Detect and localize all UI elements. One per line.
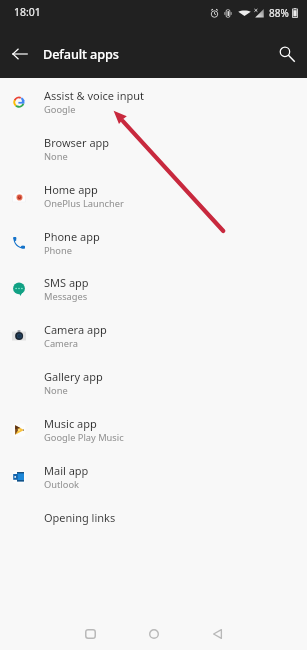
button[interactable]: Search: [267, 34, 307, 74]
staticText: Default apps: [43, 45, 119, 62]
staticText: SMS app: [44, 275, 89, 290]
button[interactable]: Home: [137, 617, 171, 650]
staticText: Assist & voice input: [44, 88, 145, 103]
button[interactable]: Recent apps: [73, 617, 107, 650]
staticText: Outlook: [44, 478, 79, 491]
staticText: Messages: [44, 290, 88, 303]
button[interactable]: Home app: [0, 172, 307, 219]
button[interactable]: Music app: [0, 406, 307, 453]
staticText: Gallery app: [44, 369, 103, 384]
button[interactable]: Phone app: [0, 219, 307, 266]
staticText: None: [44, 384, 68, 397]
staticText: Camera: [44, 337, 78, 350]
staticText: Home app: [44, 182, 98, 197]
staticText: Google: [44, 103, 76, 116]
staticText: Phone: [44, 244, 72, 257]
staticText: Google Play Music: [44, 431, 124, 444]
staticText: None: [44, 150, 68, 163]
button[interactable]: Back: [200, 617, 234, 650]
staticText: OnePlus Launcher: [44, 197, 124, 210]
button[interactable]: Browser app: [0, 125, 307, 172]
button[interactable]: SMS app: [0, 265, 307, 312]
button[interactable]: Camera app: [0, 312, 307, 359]
button[interactable]: Mail app: [0, 453, 307, 500]
staticText: Camera app: [44, 322, 107, 337]
button[interactable]: Assist & voice input: [0, 78, 307, 125]
staticText: Phone app: [44, 229, 100, 244]
staticText: 18:01: [14, 5, 41, 19]
button[interactable]: Back: [0, 34, 40, 74]
staticText: Music app: [44, 416, 97, 431]
staticText: 88%: [269, 6, 289, 20]
staticText: Mail app: [44, 463, 89, 478]
staticText: Browser app: [44, 135, 110, 150]
button[interactable]: Opening links: [0, 500, 307, 547]
button[interactable]: Gallery app: [0, 359, 307, 406]
staticText: Opening links: [44, 510, 116, 525]
